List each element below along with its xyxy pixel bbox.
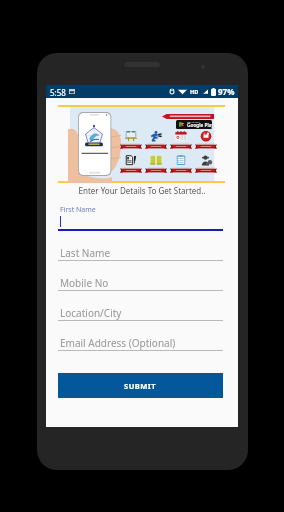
staticText: Location/City bbox=[60, 306, 122, 320]
button[interactable]: Teachers bbox=[195, 155, 217, 173]
button[interactable]: Smart Board bbox=[120, 131, 142, 149]
button[interactable]: Last Name bbox=[58, 246, 223, 266]
staticText: Mobile No bbox=[60, 276, 109, 290]
button[interactable]: Mobile No bbox=[58, 276, 223, 296]
button[interactable]: First Name bbox=[58, 203, 223, 214]
button[interactable]: Attendance bbox=[170, 131, 192, 149]
button[interactable]: Time Table bbox=[195, 131, 217, 149]
staticText: HD bbox=[190, 88, 199, 95]
button[interactable]: Exam bbox=[120, 155, 142, 173]
staticText: 97% bbox=[218, 86, 235, 97]
button[interactable]: Sports bbox=[145, 131, 167, 149]
staticText: 5:58 bbox=[50, 87, 66, 98]
staticText: Email Address (Optional) bbox=[60, 336, 176, 350]
button[interactable]: Homework bbox=[170, 155, 192, 173]
button[interactable]: SUBMIT bbox=[58, 373, 223, 398]
staticText: Last Name bbox=[60, 246, 111, 260]
button[interactable]: Library bbox=[145, 155, 167, 173]
staticText: Enter Your Details To Get Started.. bbox=[46, 185, 238, 196]
staticText: SUBMIT bbox=[124, 381, 157, 391]
button[interactable]: Email Address (Optional) bbox=[58, 336, 223, 356]
staticText: Google Play bbox=[187, 122, 212, 129]
staticText: First Name bbox=[60, 205, 96, 215]
staticText: GET IT ON bbox=[187, 120, 200, 123]
button[interactable]: Location/City bbox=[58, 306, 223, 326]
button[interactable]: Get it on Google Play bbox=[176, 120, 212, 129]
